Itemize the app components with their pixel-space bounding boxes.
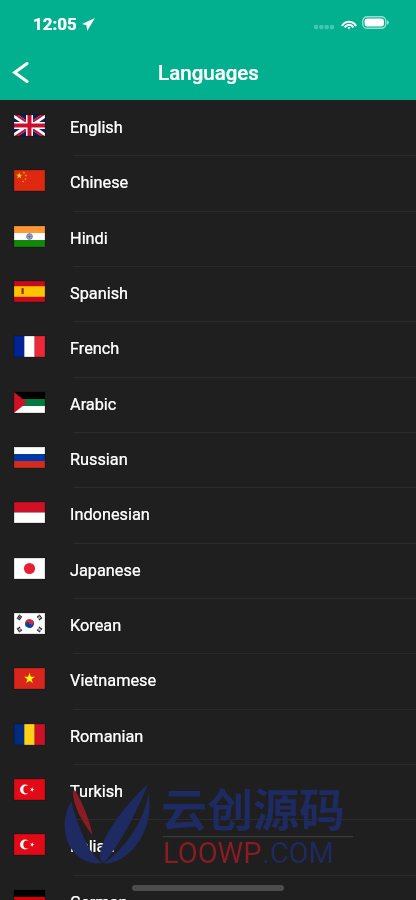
staticText: Japanese	[70, 561, 141, 580]
button[interactable]: German	[0, 875, 416, 900]
staticText: Indonesian	[70, 505, 150, 524]
staticText: Vietnamese	[70, 671, 157, 690]
button[interactable]: English	[0, 100, 416, 155]
button[interactable]: Chinese	[0, 155, 416, 210]
staticText: Spanish	[70, 284, 129, 303]
button[interactable]: Japanese	[0, 543, 416, 598]
staticText: French	[70, 339, 120, 358]
staticText: Hindi	[70, 229, 108, 248]
staticText: Languages	[158, 61, 259, 85]
staticText: English	[70, 118, 123, 137]
staticText: Turkish	[70, 782, 124, 801]
button[interactable]: Vietnamese	[0, 653, 416, 708]
button[interactable]: Hindi	[0, 211, 416, 266]
staticText: German	[70, 893, 128, 900]
staticText: Italian	[70, 837, 115, 856]
staticText: 云创源码	[161, 774, 345, 841]
button[interactable]: Romanian	[0, 709, 416, 764]
button[interactable]: Arabic	[0, 377, 416, 432]
staticText: Korean	[70, 616, 122, 635]
button[interactable]: Spanish	[0, 266, 416, 321]
button[interactable]: French	[0, 321, 416, 376]
staticText: Russian	[70, 450, 128, 469]
staticText: 12:05	[33, 14, 77, 34]
button[interactable]: Korean	[0, 598, 416, 653]
staticText: LOOWP	[163, 836, 262, 870]
staticText: Arabic	[70, 395, 117, 414]
staticText: Chinese	[70, 173, 129, 192]
button[interactable]: Russian	[0, 432, 416, 487]
staticText: Romanian	[70, 727, 144, 746]
staticText: .COM	[262, 836, 334, 870]
button[interactable]: Back	[0, 49, 48, 97]
button[interactable]: Indonesian	[0, 487, 416, 542]
button[interactable]: Turkish	[0, 764, 416, 819]
button[interactable]: Italian	[0, 819, 416, 874]
